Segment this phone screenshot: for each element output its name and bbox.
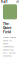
staticText: 9:41 bbox=[1, 0, 8, 4]
staticText: ıll bbox=[16, 0, 19, 4]
staticText: The Quiet Field bbox=[3, 22, 11, 34]
staticText: Lorem ipsum dolor sit amet, consectetur … bbox=[3, 36, 16, 58]
